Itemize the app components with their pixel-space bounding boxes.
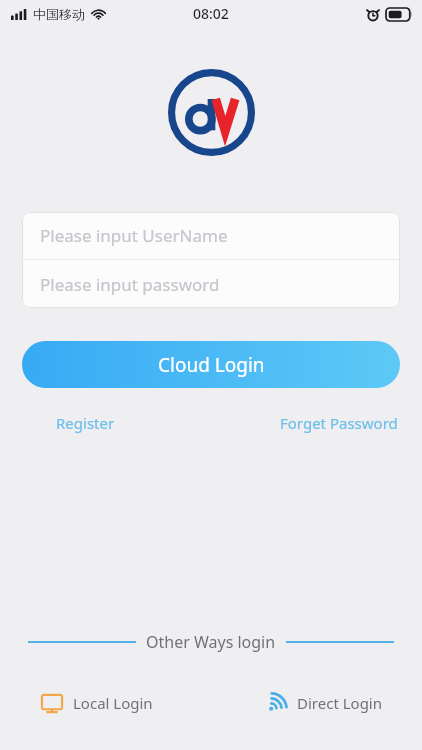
- staticText: Local Login: [73, 693, 153, 713]
- button[interactable]: Direct Login: [258, 685, 388, 721]
- button[interactable]: Username field: [22, 212, 400, 259]
- staticText: Please input password: [40, 273, 220, 296]
- staticText: Forget Password: [280, 413, 398, 433]
- button[interactable]: Local Login: [34, 685, 159, 721]
- button[interactable]: Forget Password: [274, 410, 404, 436]
- other: App logo: [168, 69, 255, 156]
- staticText: 中国移动: [33, 6, 85, 22]
- button[interactable]: Cloud Login: [22, 341, 400, 388]
- staticText: Direct Login: [297, 693, 382, 713]
- staticText: Cloud Login: [158, 352, 265, 378]
- button[interactable]: Password field: [22, 260, 400, 308]
- staticText: 08:02: [193, 4, 229, 23]
- button[interactable]: Register: [50, 410, 121, 436]
- staticText: Please input UserName: [40, 224, 228, 247]
- staticText: Other Ways login: [146, 631, 276, 653]
- staticText: Register: [56, 413, 115, 433]
